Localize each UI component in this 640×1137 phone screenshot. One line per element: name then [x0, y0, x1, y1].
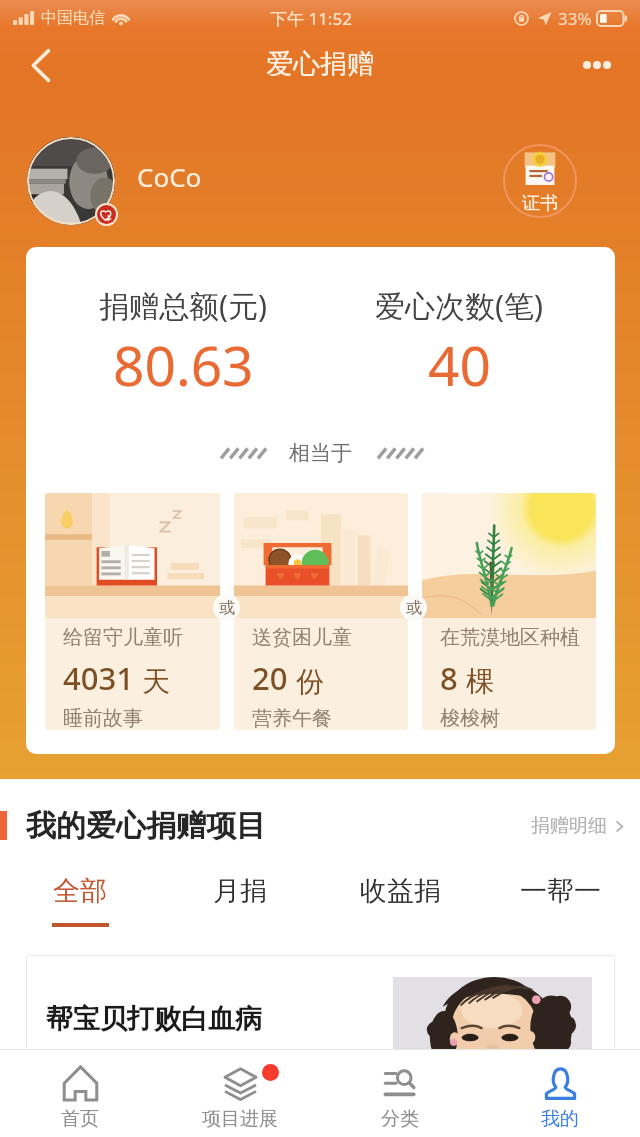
- staticText: 捐赠明细: [531, 814, 607, 838]
- staticText: 全部: [53, 874, 107, 908]
- staticText: 帮宝贝打败白血病: [46, 1002, 262, 1036]
- staticText: 睡前故事: [63, 706, 143, 730]
- button[interactable]: Back: [12, 37, 68, 93]
- staticText: 80.63: [113, 327, 254, 402]
- button[interactable]: 月捐: [160, 862, 320, 934]
- button[interactable]: 收益捐: [320, 862, 480, 934]
- staticText: CoCo: [137, 159, 202, 194]
- staticText: 20: [252, 657, 288, 699]
- staticText: 我的: [541, 1107, 579, 1131]
- button[interactable]: 证书: [503, 144, 577, 218]
- button[interactable]: 在荒漠地区种植: [422, 493, 596, 730]
- staticText: 33%: [558, 7, 592, 30]
- staticText: 营养午餐: [252, 706, 332, 730]
- staticText: 爱心捐赠: [266, 47, 374, 81]
- staticText: 收益捐: [360, 874, 441, 908]
- staticText: 我的爱心捐赠项目: [26, 807, 266, 845]
- button[interactable]: 帮宝贝打败白血病: [26, 955, 615, 1085]
- button[interactable]: 分类: [320, 1050, 480, 1137]
- button[interactable]: 一帮一: [480, 862, 640, 934]
- staticText: 证书: [522, 192, 558, 215]
- button[interactable]: 捐赠明细: [531, 814, 626, 838]
- staticText: 梭梭树: [440, 706, 500, 730]
- staticText: 棵: [466, 664, 494, 699]
- staticText: 4031: [63, 657, 134, 699]
- button[interactable]: 全部: [0, 862, 160, 934]
- button[interactable]: 我的: [480, 1050, 640, 1137]
- button[interactable]: More options: [573, 41, 621, 89]
- staticText: 一帮一: [520, 874, 601, 908]
- staticText: 给留守儿童听: [63, 625, 183, 650]
- staticText: 首页: [61, 1107, 99, 1131]
- staticText: 或: [406, 598, 422, 618]
- staticText: 8: [440, 657, 458, 699]
- staticText: 项目进展: [202, 1107, 278, 1131]
- staticText: 40: [428, 327, 491, 402]
- staticText: 天: [142, 664, 170, 699]
- button[interactable]: 项目进展: [160, 1050, 320, 1137]
- staticText: 爱心次数(笔): [375, 285, 543, 326]
- button[interactable]: 给留守儿童听: [45, 493, 220, 730]
- staticText: 中国电信: [41, 8, 105, 28]
- staticText: 月捐: [213, 874, 267, 908]
- staticText: 份: [296, 664, 324, 699]
- staticText: 下午 11:52: [270, 7, 352, 30]
- staticText: 送贫困儿童: [252, 625, 352, 650]
- button[interactable]: 首页: [0, 1050, 160, 1137]
- staticText: 在荒漠地区种植: [440, 625, 580, 650]
- button[interactable]: 送贫困儿童: [234, 493, 408, 730]
- staticText: 分类: [381, 1107, 419, 1131]
- staticText: 捐赠总额(元): [99, 285, 267, 326]
- staticText: 相当于: [289, 440, 352, 466]
- staticText: 或: [219, 598, 235, 618]
